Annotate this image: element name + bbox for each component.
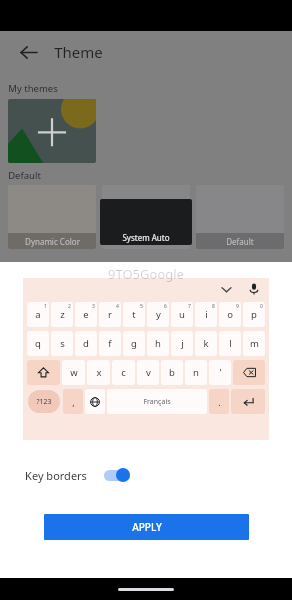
staticText: 3 (92, 303, 95, 310)
button[interactable]: f (99, 331, 121, 356)
staticText: , (72, 396, 75, 408)
button[interactable]: System Auto (100, 199, 192, 245)
button[interactable]: b (161, 360, 183, 385)
button[interactable]: Key borders (0, 458, 292, 492)
button[interactable]: n (185, 360, 207, 385)
button[interactable]: , (63, 389, 83, 414)
staticText: s (60, 337, 65, 350)
staticText: Default (8, 169, 41, 182)
button[interactable]: z (51, 302, 73, 327)
staticText: t (132, 308, 136, 321)
staticText: . (218, 396, 221, 408)
staticText: u (179, 308, 185, 321)
staticText: System Auto (122, 232, 170, 243)
staticText: ?123 (36, 397, 52, 407)
button[interactable]: l (219, 331, 241, 356)
staticText: Theme (54, 42, 103, 62)
staticText: r (108, 308, 112, 321)
staticText: Français (143, 397, 171, 407)
button[interactable]: u (171, 302, 193, 327)
staticText: f (108, 337, 112, 350)
button[interactable]: a (27, 302, 49, 327)
staticText: Dynamic Color (25, 236, 80, 247)
button[interactable]: Shift (27, 360, 60, 385)
button[interactable]: g (123, 331, 145, 356)
staticText: x (96, 366, 102, 379)
staticText: 5 (140, 303, 143, 310)
button[interactable]: Collapse keyboard (219, 282, 233, 296)
button[interactable]: w (62, 360, 85, 385)
staticText: d (83, 337, 89, 350)
staticText: k (203, 337, 209, 350)
button[interactable]: h (147, 331, 169, 356)
button[interactable]: d (75, 331, 97, 356)
button[interactable]: Change language (85, 389, 105, 414)
button[interactable]: i (195, 302, 217, 327)
button[interactable]: ' (209, 360, 231, 385)
staticText: 9 (236, 303, 239, 310)
staticText: y (156, 308, 161, 321)
button[interactable]: q (27, 331, 49, 356)
button[interactable]: j (171, 331, 193, 356)
button[interactable]: Français (107, 389, 207, 414)
staticText: APPLY (132, 520, 162, 534)
staticText: n (193, 366, 199, 379)
staticText: 4 (116, 303, 119, 310)
staticText: z (60, 308, 65, 321)
button[interactable]: Enter (231, 389, 265, 414)
staticText: j (181, 337, 184, 350)
staticText: 8 (212, 303, 215, 310)
button[interactable]: v (137, 360, 159, 385)
staticText: o (227, 308, 233, 321)
staticText: 2 (68, 303, 71, 310)
staticText: b (169, 366, 175, 379)
button[interactable]: o (219, 302, 241, 327)
staticText: q (35, 337, 41, 350)
button[interactable]: Voice input (247, 282, 261, 296)
staticText: p (251, 308, 257, 321)
button[interactable]: ?123 (28, 390, 60, 413)
button[interactable]: r (99, 302, 121, 327)
button[interactable]: t (123, 302, 145, 327)
staticText: e (83, 308, 89, 321)
button[interactable]: . (209, 389, 229, 414)
button[interactable]: k (195, 331, 217, 356)
staticText: ' (219, 366, 222, 379)
staticText: My themes (8, 82, 58, 95)
staticText: 7 (188, 303, 191, 310)
staticText: c (121, 366, 126, 379)
staticText: a (35, 308, 41, 321)
button[interactable]: y (147, 302, 169, 327)
staticText: Default (226, 236, 254, 247)
button[interactable] (102, 185, 190, 249)
staticText: Key borders (25, 468, 87, 483)
staticText: 0 (260, 303, 263, 310)
button[interactable] (8, 99, 96, 163)
button[interactable]: e (75, 302, 97, 327)
button[interactable]: s (51, 331, 73, 356)
staticText: v (146, 366, 151, 379)
button[interactable]: p (243, 302, 265, 327)
staticText: w (70, 366, 78, 379)
button[interactable]: Dynamic Color (8, 185, 96, 249)
button[interactable]: Backspace (233, 360, 265, 385)
button[interactable]: Back (12, 36, 44, 68)
staticText: i (205, 308, 208, 321)
staticText: g (131, 337, 137, 350)
button[interactable]: APPLY (44, 514, 249, 540)
staticText: h (155, 337, 161, 350)
staticText: 1 (44, 303, 47, 310)
button[interactable]: m (243, 331, 265, 356)
button[interactable]: Default (196, 185, 284, 249)
staticText: m (250, 337, 259, 350)
button[interactable]: x (87, 360, 110, 385)
button[interactable]: c (112, 360, 135, 385)
staticText: 9TO5Google (108, 265, 184, 283)
staticText: 6 (164, 303, 167, 310)
staticText: l (229, 337, 232, 350)
